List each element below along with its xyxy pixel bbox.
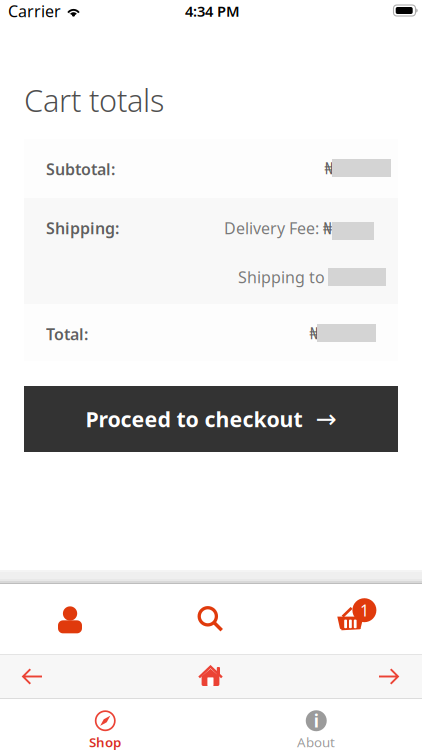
staticText: Shipping to: [238, 266, 325, 288]
staticText: ₦: [324, 157, 333, 179]
staticText: 1: [360, 600, 369, 621]
staticText: →: [315, 405, 336, 433]
staticText: Subtotal:: [46, 158, 115, 180]
staticText: About: [297, 733, 335, 750]
button[interactable]: Cart, 1 item: [0, 0, 110, 70]
staticText: Shop: [89, 733, 121, 750]
staticText: 4:34 PM: [185, 1, 240, 21]
staticText: Total:: [46, 323, 88, 345]
staticText: Delivery Fee:: [224, 217, 319, 239]
button[interactable]: Proceed to checkout: [24, 386, 398, 452]
button[interactable]: i: [211, 699, 422, 750]
staticText: Cart totals: [24, 80, 164, 120]
button[interactable]: Back: [0, 0, 65, 45]
staticText: i: [314, 709, 319, 732]
button[interactable]: Home: [0, 0, 44, 45]
button[interactable]: Forward: [0, 0, 64, 45]
staticText: Carrier: [8, 0, 61, 22]
staticText: Proceed to checkout: [85, 405, 302, 433]
button[interactable]: Search: [0, 0, 110, 70]
staticText: ₦: [319, 217, 332, 239]
staticText: ₦: [309, 322, 318, 344]
button[interactable]: Shop: [0, 699, 211, 750]
staticText: Shipping:: [46, 217, 119, 239]
button[interactable]: Account: [0, 0, 110, 70]
